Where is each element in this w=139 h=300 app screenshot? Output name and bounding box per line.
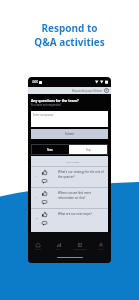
- button[interactable]: Polls: [48, 241, 69, 253]
- other: Account: [104, 88, 109, 93]
- staticText: Responding as Jo Nelson: [72, 89, 103, 93]
- staticText: Login: [98, 248, 104, 251]
- button[interactable]: 1: [31, 187, 108, 208]
- staticText: Registration: [74, 248, 86, 251]
- staticText: 1: [36, 174, 38, 177]
- button[interactable]: Enter a response: [31, 111, 108, 127]
- staticText: Any questions for the team?: [31, 98, 79, 103]
- other: Upvote: [42, 191, 47, 196]
- button[interactable]: Login: [90, 241, 111, 253]
- staticText: Q&A activities: [34, 35, 105, 49]
- other: Comment: [42, 221, 47, 226]
- other: Upvote: [42, 170, 47, 175]
- other: Comment: [42, 179, 47, 184]
- button[interactable]: Submit: [31, 129, 108, 139]
- other: Comment: [42, 200, 47, 205]
- staticText: Submit: [65, 132, 74, 136]
- button[interactable]: Top: [69, 144, 108, 155]
- staticText: Home: [35, 248, 41, 251]
- button[interactable]: 0: [31, 208, 108, 229]
- staticText: New: [47, 148, 53, 152]
- staticText: Respond to: [41, 21, 98, 35]
- other: Upvote: [42, 212, 47, 217]
- staticText: You have not responded: [31, 103, 61, 107]
- button[interactable]: 1: [31, 166, 108, 187]
- staticText: Enter a response: [33, 113, 54, 117]
- button[interactable]: Registration: [69, 241, 90, 253]
- staticText: Top: [86, 148, 91, 152]
- button[interactable]: Home: [28, 241, 48, 253]
- button[interactable]: New: [31, 144, 69, 155]
- staticText: 1: [36, 195, 38, 198]
- staticText: Polls: [56, 248, 61, 251]
- staticText: What's our strategy for the rest of the …: [58, 170, 106, 179]
- staticText: Where can we find more information on th…: [58, 191, 106, 200]
- staticText: 4:00: [32, 80, 38, 84]
- staticText: What are our next steps?: [58, 212, 106, 216]
- staticText: 0: [36, 216, 38, 219]
- staticText: Most recent: [66, 160, 80, 163]
